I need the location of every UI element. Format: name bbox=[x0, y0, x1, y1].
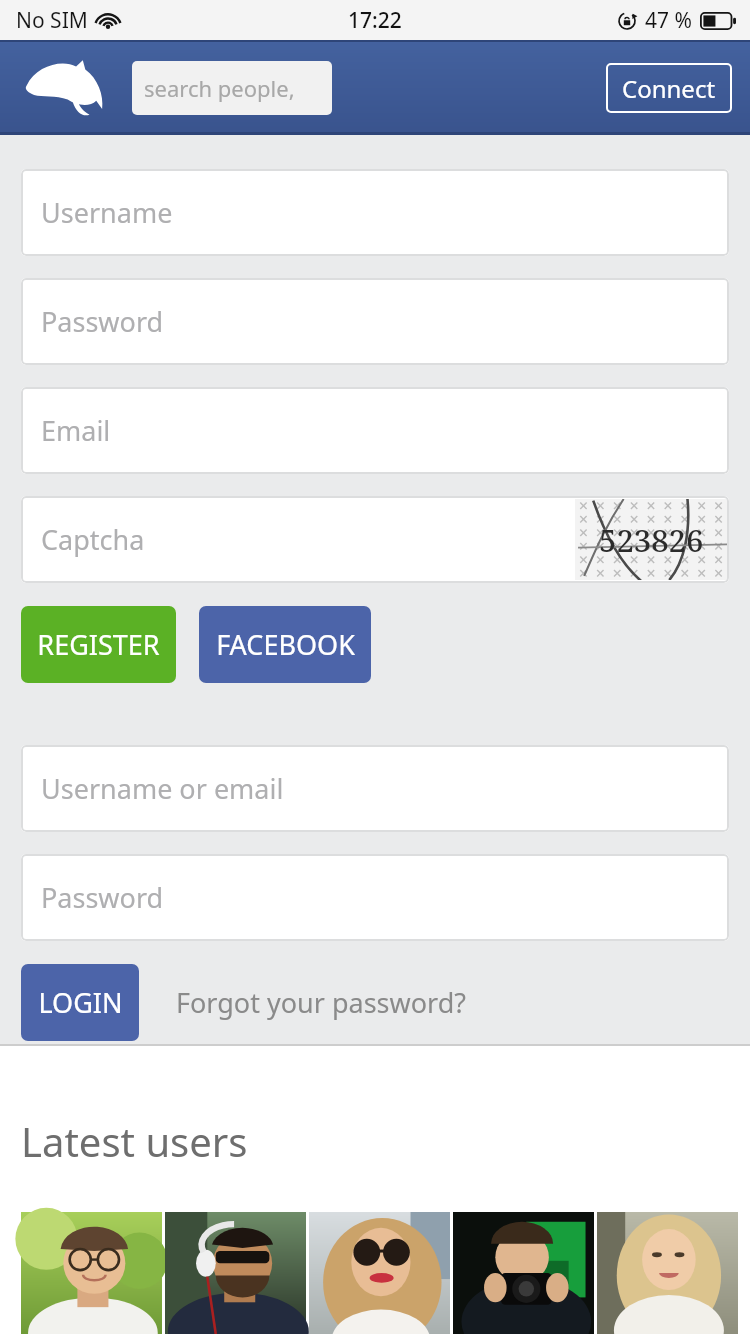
button[interactable]: Password bbox=[21, 854, 729, 941]
staticText: FACEBOOK bbox=[216, 626, 355, 663]
button[interactable]: User profile 2 bbox=[165, 1212, 306, 1334]
staticText: Latest users bbox=[21, 1114, 248, 1168]
button[interactable]: FACEBOOK bbox=[199, 606, 371, 683]
button[interactable]: LOGIN bbox=[21, 964, 139, 1041]
staticText: REGISTER bbox=[37, 626, 160, 663]
button[interactable]: Username bbox=[21, 169, 729, 256]
staticText: No SIM bbox=[16, 6, 88, 35]
staticText: 523826 bbox=[599, 519, 704, 561]
button[interactable]: Password bbox=[21, 278, 729, 365]
button[interactable]: Username or email bbox=[21, 745, 729, 832]
button[interactable]: User profile 4 bbox=[453, 1212, 594, 1334]
staticText: Username bbox=[41, 194, 173, 231]
staticText: Connect bbox=[622, 72, 716, 105]
button[interactable]: Forgot your password? bbox=[176, 984, 467, 1021]
staticText: Password bbox=[41, 879, 164, 916]
button[interactable]: Email bbox=[21, 387, 729, 474]
staticText: Captcha bbox=[41, 521, 145, 558]
button[interactable]: User profile 3 bbox=[309, 1212, 450, 1334]
staticText: Forgot your password? bbox=[176, 984, 467, 1021]
staticText: Email bbox=[41, 412, 111, 449]
button[interactable]: Connect bbox=[606, 63, 732, 113]
staticText: Password bbox=[41, 303, 164, 340]
button[interactable]: search people, bbox=[132, 61, 332, 115]
button[interactable]: Home bbox=[24, 59, 108, 117]
staticText: 47 % bbox=[645, 6, 692, 35]
button[interactable]: REGISTER bbox=[21, 606, 176, 683]
staticText: Username or email bbox=[41, 770, 284, 807]
button[interactable]: User profile 5 bbox=[597, 1212, 738, 1334]
button[interactable]: Captcha bbox=[21, 496, 729, 583]
staticText: LOGIN bbox=[38, 984, 123, 1021]
staticText: search people, bbox=[144, 73, 295, 103]
button[interactable]: User profile 1 bbox=[21, 1212, 162, 1334]
staticText: 17:22 bbox=[348, 6, 402, 35]
